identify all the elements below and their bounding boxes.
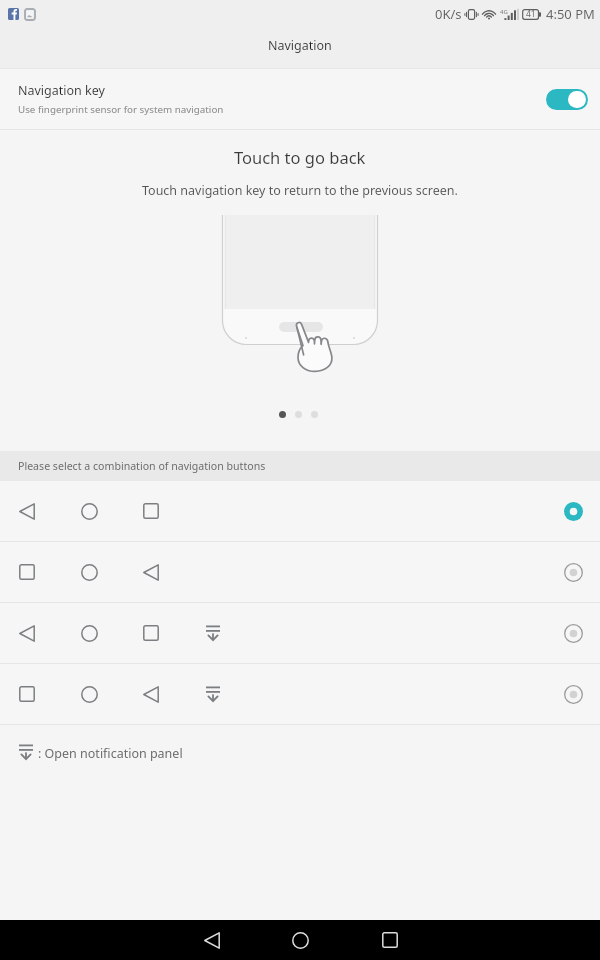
button[interactable]: Navigation key (0, 69, 600, 129)
staticText: 4G (500, 8, 508, 16)
staticText: Touch navigation key to return to the pr… (142, 182, 458, 199)
button[interactable]: Select combination (0, 664, 600, 724)
staticText: 0K/s (435, 5, 462, 23)
button[interactable]: Home (256, 920, 345, 960)
button[interactable]: Select combination (553, 552, 593, 592)
button[interactable]: Select combination (553, 674, 593, 714)
button[interactable]: Back (167, 920, 256, 960)
staticText: 41 (526, 8, 536, 20)
staticText: Touch to go back (234, 146, 366, 168)
staticText: Please select a combination of navigatio… (18, 459, 266, 473)
staticText: : Open notification panel (38, 745, 183, 762)
button[interactable]: Select combination (553, 491, 593, 531)
staticText: 4:50 PM (546, 5, 595, 23)
staticText: Navigation (268, 37, 332, 54)
button[interactable]: Recents (345, 920, 434, 960)
staticText: Navigation key (18, 82, 105, 99)
button[interactable]: Select combination (0, 481, 600, 541)
button[interactable]: Navigation key toggle (546, 89, 588, 110)
staticText: Use fingerprint sensor for system naviga… (18, 103, 224, 116)
button[interactable]: Select combination (0, 542, 600, 602)
button[interactable]: Select combination (553, 613, 593, 653)
button[interactable]: Select combination (0, 603, 600, 663)
